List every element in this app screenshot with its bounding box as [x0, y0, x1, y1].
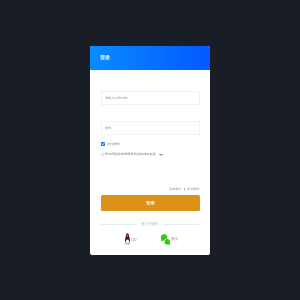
button[interactable]: WeChat login — [161, 234, 179, 245]
staticText: 请输入手机号码 — [105, 96, 128, 100]
button[interactable]: 我已阅读并同意服务协议和隐私政策 — [101, 152, 163, 156]
button[interactable]: 注册账号 — [169, 187, 182, 191]
button[interactable]: 密码 — [101, 121, 200, 135]
button[interactable]: 记住密码 — [101, 142, 120, 146]
staticText: QQ — [131, 237, 137, 242]
staticText: 密码 — [105, 126, 112, 130]
button[interactable]: 请输入手机号码 — [101, 91, 200, 105]
staticText: 登录 — [100, 54, 110, 60]
other: WeChat login — [161, 234, 170, 245]
button[interactable]: 登录 — [101, 195, 200, 211]
staticText: 登录 — [146, 200, 155, 206]
staticText: 记住密码 — [107, 142, 120, 146]
staticText: 第三方登录 — [141, 222, 158, 226]
other: QQ login — [125, 233, 130, 245]
staticText: 微信 — [171, 237, 179, 242]
button[interactable]: QQ login — [125, 233, 137, 245]
staticText: 我已阅读并同意服务协议和隐私政策 — [105, 152, 156, 156]
button[interactable]: 忘记密码 — [187, 187, 200, 191]
